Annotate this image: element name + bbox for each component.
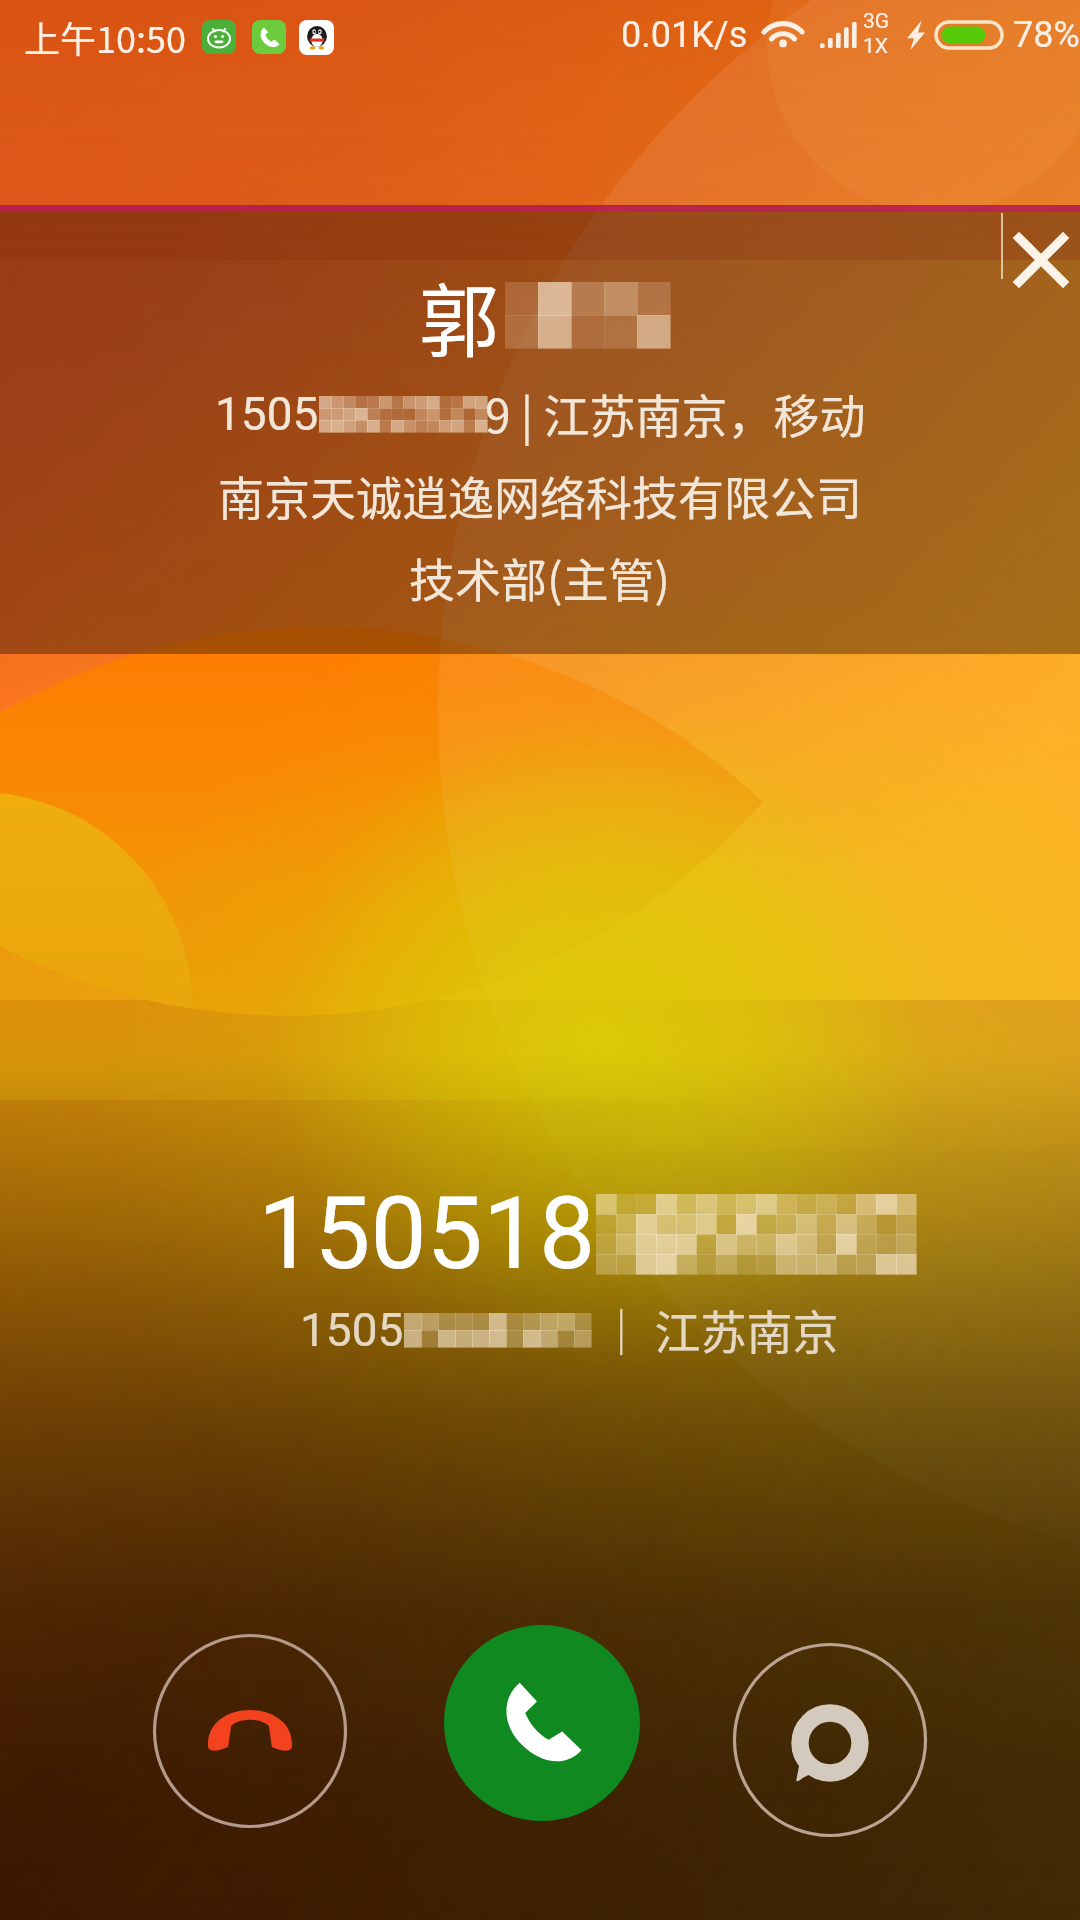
button[interactable]: Answer call xyxy=(444,1625,640,1821)
staticText: 150518 xyxy=(258,1175,596,1292)
button[interactable]: Close xyxy=(1004,223,1078,297)
staticText: 上午10:50 xyxy=(24,11,186,63)
staticText: 9 | 江苏南京，移动 xyxy=(485,380,866,447)
button[interactable]: Send message xyxy=(732,1642,928,1838)
staticText: 0.01K/s xyxy=(621,14,748,56)
staticText: 3G xyxy=(863,9,890,34)
staticText: 78% xyxy=(1013,14,1080,56)
staticText: 郭 xyxy=(419,257,499,373)
button[interactable]: Decline call xyxy=(152,1633,348,1829)
staticText: 1X xyxy=(863,34,888,59)
staticText: 1505 xyxy=(215,387,319,441)
staticText: 1505 xyxy=(300,1303,404,1357)
staticText: 南京天诚逍逸网络科技有限公司 xyxy=(218,462,862,529)
staticText: │ 江苏南京 xyxy=(588,1296,839,1363)
staticText: 技术部(主管) xyxy=(409,544,671,611)
